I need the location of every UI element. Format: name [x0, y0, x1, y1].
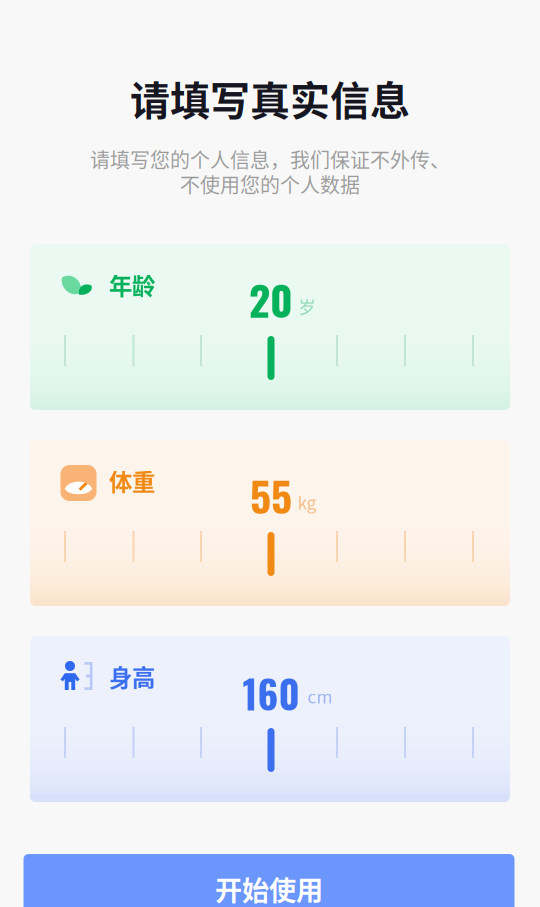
- staticText: kg: [297, 489, 316, 515]
- staticText: 岁: [298, 293, 315, 319]
- staticText: 55: [250, 464, 292, 526]
- staticText: 体重: [109, 464, 155, 497]
- staticText: 请填写您的个人信息，我们保证不外传、: [90, 144, 450, 173]
- button[interactable]: 年龄: [30, 244, 510, 410]
- button[interactable]: 开始使用: [23, 854, 514, 907]
- staticText: 年龄: [109, 268, 155, 301]
- button[interactable]: 身高: [30, 636, 510, 802]
- staticText: 身高: [109, 660, 155, 693]
- staticText: cm: [307, 683, 332, 709]
- staticText: 不使用您的个人数据: [180, 169, 360, 198]
- staticText: 20: [249, 268, 293, 330]
- staticText: 开始使用: [215, 869, 323, 907]
- staticText: 请填写真实信息: [130, 69, 410, 127]
- staticText: 160: [242, 664, 299, 722]
- button[interactable]: 体重: [30, 440, 510, 606]
